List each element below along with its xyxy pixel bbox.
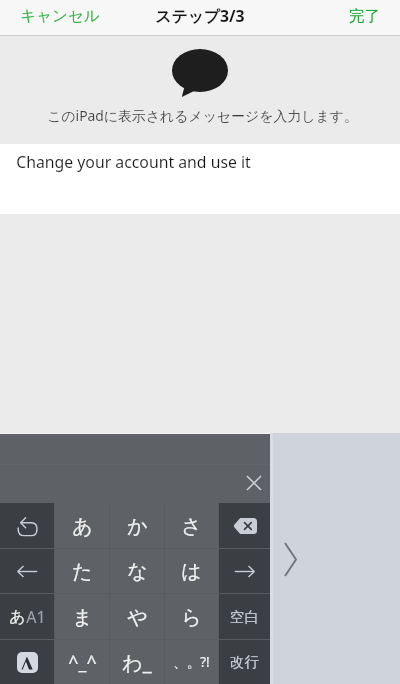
- button[interactable]: Close keyboard: [239, 468, 269, 498]
- staticText: な: [127, 559, 148, 584]
- button[interactable]: ら: [165, 594, 218, 640]
- staticText: た: [72, 559, 93, 584]
- staticText: か: [127, 514, 148, 539]
- other: Delete: [233, 518, 257, 534]
- staticText: ^_^: [68, 650, 97, 675]
- staticText: わ_: [122, 649, 152, 676]
- button[interactable]: Delete: [219, 503, 270, 549]
- button[interactable]: Move left: [0, 549, 54, 594]
- staticText: は: [181, 559, 202, 584]
- staticText: や: [127, 605, 148, 630]
- button[interactable]: わ_: [110, 640, 164, 684]
- button[interactable]: Undo: [0, 503, 54, 549]
- staticText: さ: [181, 514, 202, 539]
- staticText: あ: [9, 607, 26, 627]
- button[interactable]: 完了: [326, 0, 400, 33]
- staticText: A1: [26, 606, 46, 628]
- staticText: ら: [181, 605, 202, 630]
- staticText: 、。?!: [173, 653, 210, 671]
- staticText: 空白: [230, 608, 259, 626]
- button[interactable]: Change your account and use it: [0, 144, 400, 214]
- staticText: 完了: [349, 6, 380, 26]
- button[interactable]: さ: [165, 503, 218, 549]
- button[interactable]: な: [110, 549, 164, 594]
- button[interactable]: た: [55, 549, 109, 594]
- button[interactable]: 改行: [219, 640, 270, 684]
- button[interactable]: あ: [0, 594, 54, 640]
- button[interactable]: や: [110, 594, 164, 640]
- button[interactable]: Keyboard settings: [0, 640, 54, 684]
- staticText: Change your account and use it: [16, 151, 251, 173]
- staticText: このiPadに表示されるメッセージを入力します。: [47, 106, 358, 125]
- button[interactable]: Next: [274, 538, 306, 580]
- button[interactable]: キャンセル: [0, 0, 120, 33]
- button[interactable]: 空白: [219, 594, 270, 640]
- button[interactable]: は: [165, 549, 218, 594]
- staticText: 改行: [230, 653, 259, 671]
- other: Undo: [18, 517, 37, 536]
- staticText: ま: [72, 605, 93, 630]
- staticText: ステップ3/3: [155, 5, 245, 27]
- button[interactable]: Move right: [219, 549, 270, 594]
- staticText: あ: [72, 514, 93, 539]
- button[interactable]: あ: [55, 503, 109, 549]
- button[interactable]: ^_^: [55, 640, 109, 684]
- button[interactable]: か: [110, 503, 164, 549]
- button[interactable]: 、。?!: [165, 640, 218, 684]
- staticText: キャンセル: [20, 6, 100, 26]
- button[interactable]: ま: [55, 594, 109, 640]
- other: Move left: [17, 565, 38, 578]
- other: Keyboard settings: [17, 652, 38, 673]
- other: Move right: [234, 565, 255, 578]
- other: Message bubble: [172, 49, 228, 97]
